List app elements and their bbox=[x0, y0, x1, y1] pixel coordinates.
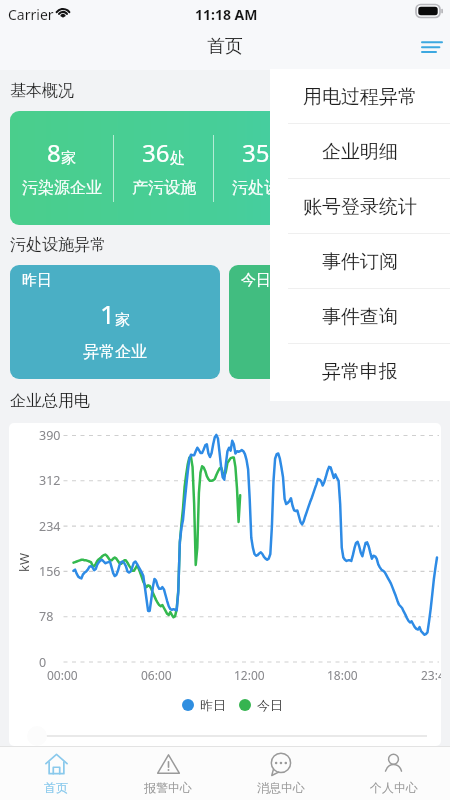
staticText: 家 bbox=[61, 149, 76, 168]
staticText: 异常申报 bbox=[322, 360, 398, 384]
button[interactable]: 异常申报 bbox=[270, 344, 450, 399]
staticText: 企业总用电 bbox=[10, 391, 90, 411]
staticText: 家 bbox=[335, 311, 350, 330]
staticText: 23:45 bbox=[421, 667, 441, 683]
staticText: 企业明细 bbox=[322, 140, 398, 164]
button[interactable]: 企业明细 bbox=[270, 124, 450, 179]
staticText: 账号登录统计 bbox=[303, 195, 417, 219]
staticText: 0 bbox=[39, 654, 47, 671]
staticText: 36 bbox=[142, 136, 170, 169]
staticText: 312 bbox=[39, 472, 61, 489]
staticText: 390 bbox=[39, 427, 61, 444]
staticText: 首页 bbox=[44, 780, 68, 795]
staticText: 用电过程异常 bbox=[303, 85, 417, 109]
staticText: 11:18 AM bbox=[195, 5, 258, 24]
button[interactable]: 消息中心 bbox=[224, 747, 337, 800]
staticText: Carrier bbox=[8, 5, 54, 24]
staticText: 昨日 bbox=[200, 697, 226, 713]
staticText: 昨日 bbox=[22, 271, 52, 290]
staticText: 基本概况 bbox=[10, 81, 74, 101]
staticText: 报警中心 bbox=[144, 780, 192, 795]
staticText: 消息中心 bbox=[257, 780, 305, 795]
button[interactable]: 8 bbox=[10, 111, 440, 225]
staticText: 18:00 bbox=[327, 667, 358, 683]
staticText: 35 bbox=[242, 136, 270, 169]
button[interactable]: 首页 bbox=[0, 747, 112, 800]
button[interactable]: 事件订阅 bbox=[270, 234, 450, 289]
button[interactable]: 用电过程异常 bbox=[270, 69, 450, 124]
staticText: 12 bbox=[342, 136, 370, 169]
staticText: 事件查询 bbox=[322, 305, 398, 329]
button[interactable]: 昨日 bbox=[10, 265, 220, 379]
button[interactable]: Menu bbox=[411, 27, 450, 68]
button[interactable]: 报警中心 bbox=[112, 747, 224, 800]
staticText: 234 bbox=[39, 518, 61, 535]
button[interactable]: 今日 bbox=[229, 265, 440, 379]
staticText: 12:00 bbox=[234, 667, 265, 683]
staticText: 异常企业 bbox=[303, 342, 367, 362]
staticText: 处 bbox=[370, 149, 385, 168]
staticText: 污染源企业 bbox=[22, 178, 102, 198]
staticText: 产污设施 bbox=[132, 178, 196, 198]
staticText: 00:00 bbox=[47, 667, 78, 683]
staticText: 污处设施 bbox=[232, 178, 296, 198]
staticText: 个人中心 bbox=[370, 780, 418, 795]
staticText: 事件订阅 bbox=[322, 250, 398, 274]
button[interactable]: 个人中心 bbox=[337, 747, 450, 800]
staticText: 排口设施 bbox=[332, 178, 396, 198]
staticText: 家 bbox=[115, 311, 130, 330]
staticText: 0 bbox=[320, 296, 335, 331]
staticText: 8 bbox=[47, 136, 61, 169]
staticText: 今日 bbox=[241, 271, 271, 290]
staticText: 异常企业 bbox=[83, 342, 147, 362]
staticText: 156 bbox=[39, 563, 61, 580]
staticText: 78 bbox=[39, 608, 54, 625]
button[interactable]: 事件查询 bbox=[270, 289, 450, 344]
staticText: 06:00 bbox=[141, 667, 172, 683]
staticText: 处 bbox=[170, 149, 185, 168]
staticText: 今日 bbox=[257, 697, 283, 713]
staticText: 首页 bbox=[207, 35, 243, 58]
staticText: kW bbox=[15, 552, 33, 572]
button[interactable]: 账号登录统计 bbox=[270, 179, 450, 234]
staticText: 1 bbox=[100, 296, 115, 331]
staticText: 污处设施异常 bbox=[10, 235, 106, 255]
